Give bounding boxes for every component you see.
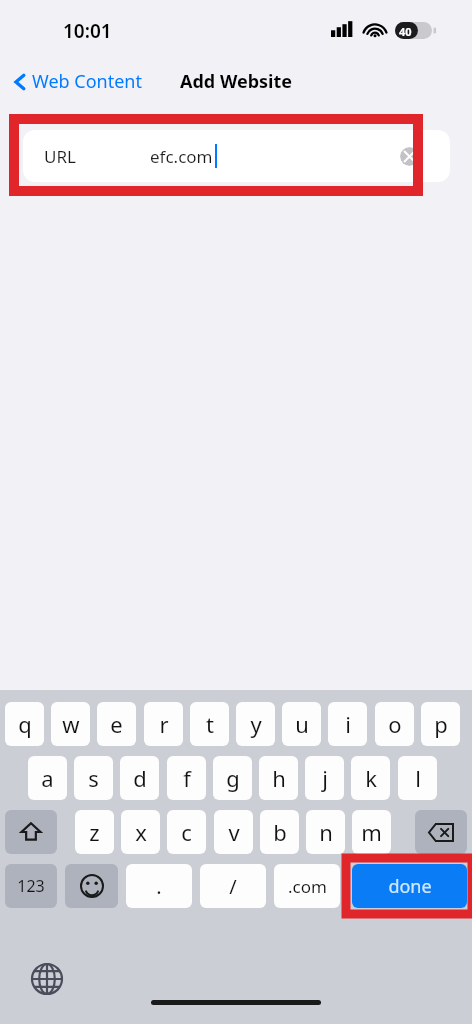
button[interactable]: l [398, 756, 437, 800]
staticText: j [322, 763, 328, 793]
staticText: 10:01 [63, 18, 112, 44]
staticText: p [434, 709, 448, 739]
button[interactable]: b [260, 810, 299, 854]
button[interactable]: i [328, 702, 367, 746]
staticText: b [273, 817, 287, 847]
button[interactable]: z [75, 810, 114, 854]
button[interactable]: o [375, 702, 414, 746]
staticText: w [62, 709, 80, 739]
staticText: h [272, 763, 286, 793]
button[interactable]: c [167, 810, 206, 854]
button[interactable]: Shift [5, 810, 57, 854]
button[interactable]: q [5, 702, 44, 746]
staticText: i [345, 709, 351, 739]
staticText: efc.com [150, 145, 213, 168]
button[interactable]: n [306, 810, 345, 854]
staticText: d [133, 763, 147, 793]
staticText: y [250, 709, 262, 739]
staticText: .com [288, 875, 327, 898]
staticText: Add Website [180, 69, 293, 94]
staticText: v [228, 817, 240, 847]
button[interactable]: g [213, 756, 252, 800]
button[interactable]: Web Content [10, 66, 146, 97]
button[interactable]: s [74, 756, 113, 800]
button[interactable]: w [51, 702, 90, 746]
button[interactable]: j [305, 756, 344, 800]
button[interactable]: y [236, 702, 275, 746]
button[interactable]: Clear text [400, 147, 419, 166]
staticText: x [135, 817, 147, 847]
staticText: r [159, 709, 169, 739]
staticText: l [415, 763, 421, 793]
button[interactable]: x [121, 810, 160, 854]
button[interactable]: m [352, 810, 391, 854]
staticText: . [156, 873, 162, 900]
staticText: n [319, 817, 333, 847]
staticText: URL [44, 145, 76, 168]
button[interactable]: p [421, 702, 460, 746]
staticText: k [365, 763, 377, 793]
button[interactable]: Change keyboard language [30, 962, 64, 996]
staticText: c [181, 817, 192, 847]
button[interactable]: k [351, 756, 390, 800]
button[interactable]: d [120, 756, 159, 800]
staticText: u [295, 709, 309, 739]
button[interactable]: a [28, 756, 67, 800]
staticText: q [18, 709, 32, 739]
button[interactable]: u [282, 702, 321, 746]
button[interactable]: f [167, 756, 206, 800]
button[interactable]: r [144, 702, 183, 746]
button[interactable]: Emoji keyboard [65, 864, 118, 908]
button[interactable]: URL [23, 130, 450, 182]
staticText: / [229, 873, 237, 900]
staticText: done [388, 874, 432, 899]
button[interactable]: done [352, 864, 467, 908]
staticText: Web Content [32, 69, 142, 94]
staticText: s [88, 763, 99, 793]
button[interactable]: Backspace [415, 810, 467, 854]
button[interactable]: . [126, 864, 192, 908]
staticText: a [41, 763, 54, 793]
button[interactable]: / [200, 864, 266, 908]
staticText: t [206, 709, 214, 739]
button[interactable]: t [190, 702, 229, 746]
button[interactable]: e [97, 702, 136, 746]
staticText: m [361, 817, 382, 847]
button[interactable]: v [214, 810, 253, 854]
staticText: z [89, 817, 100, 847]
staticText: e [110, 709, 123, 739]
staticText: f [183, 763, 191, 793]
staticText: 40 [399, 24, 412, 39]
staticText: 123 [17, 875, 45, 897]
button[interactable]: 123 [5, 864, 57, 908]
button[interactable]: .com [274, 864, 340, 908]
staticText: o [388, 709, 402, 739]
button[interactable]: h [259, 756, 298, 800]
staticText: g [226, 763, 240, 793]
